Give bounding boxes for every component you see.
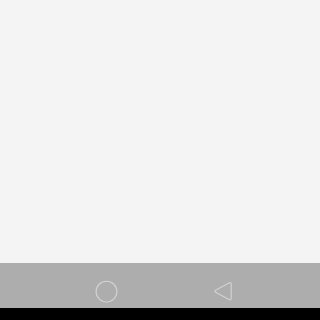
button[interactable]: Home [84, 263, 129, 308]
button[interactable]: Back [200, 263, 245, 308]
